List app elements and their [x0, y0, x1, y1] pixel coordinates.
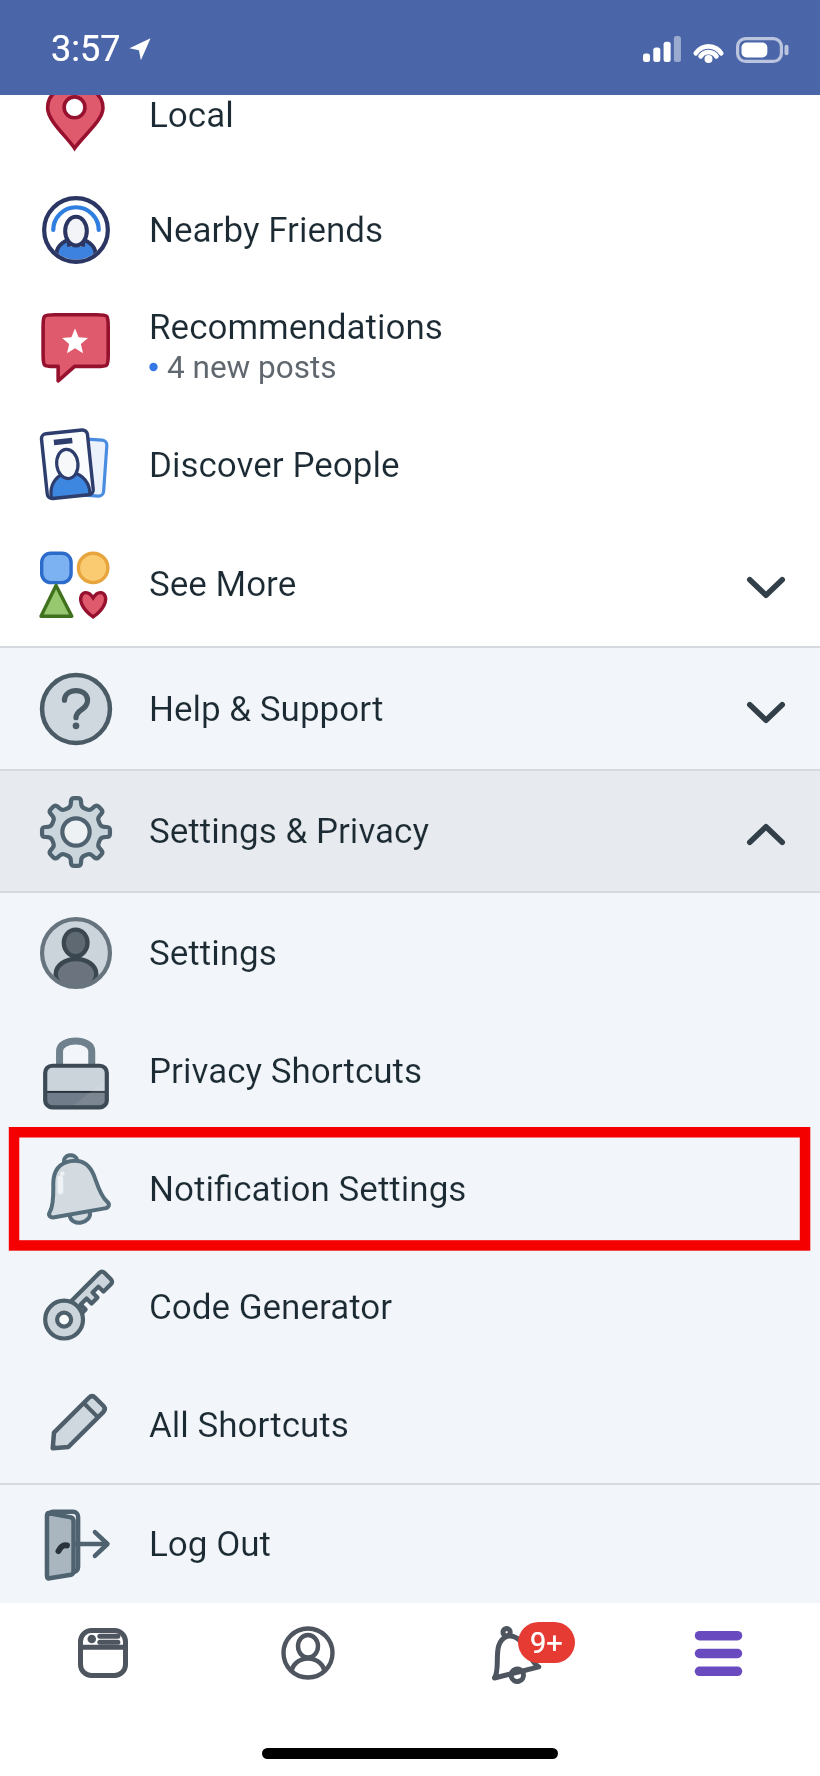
staticText: Notification Settings — [149, 1169, 467, 1210]
button[interactable]: News Feed — [0, 1603, 205, 1703]
button[interactable]: Notification Settings — [0, 1130, 820, 1248]
button[interactable]: Privacy Shortcuts — [0, 1012, 820, 1130]
staticText: Settings — [149, 933, 277, 974]
button[interactable]: Recommendations — [0, 288, 820, 406]
button[interactable]: Log Out — [0, 1485, 820, 1603]
staticText: 4 new posts — [167, 349, 337, 386]
staticText: Help & Support — [149, 689, 384, 730]
staticText: 9+ — [530, 1626, 563, 1660]
button[interactable]: All Shortcuts — [0, 1366, 820, 1484]
staticText: Settings & Privacy — [149, 811, 429, 852]
button[interactable]: Settings & Privacy — [0, 771, 820, 892]
button[interactable]: Notifications — [410, 1603, 615, 1703]
staticText: 3:57 — [51, 28, 121, 70]
button[interactable]: Settings — [0, 894, 820, 1012]
button[interactable]: See More — [0, 525, 820, 643]
staticText: Code Generator — [149, 1287, 393, 1328]
button[interactable]: Discover People — [0, 406, 820, 524]
button[interactable]: Menu — [615, 1603, 820, 1703]
button[interactable]: Profile — [205, 1603, 410, 1703]
button[interactable]: Local — [0, 56, 820, 174]
button[interactable]: Nearby Friends — [0, 171, 820, 289]
button[interactable]: Help & Support — [0, 648, 820, 770]
staticText: Discover People — [149, 445, 400, 486]
staticText: All Shortcuts — [149, 1405, 349, 1446]
button[interactable]: Code Generator — [0, 1248, 820, 1366]
staticText: Nearby Friends — [149, 210, 384, 251]
staticText: Log Out — [149, 1524, 271, 1565]
staticText: Local — [149, 95, 234, 136]
staticText: Recommendations — [149, 307, 443, 348]
staticText: See More — [149, 564, 297, 605]
staticText: Privacy Shortcuts — [149, 1051, 423, 1092]
